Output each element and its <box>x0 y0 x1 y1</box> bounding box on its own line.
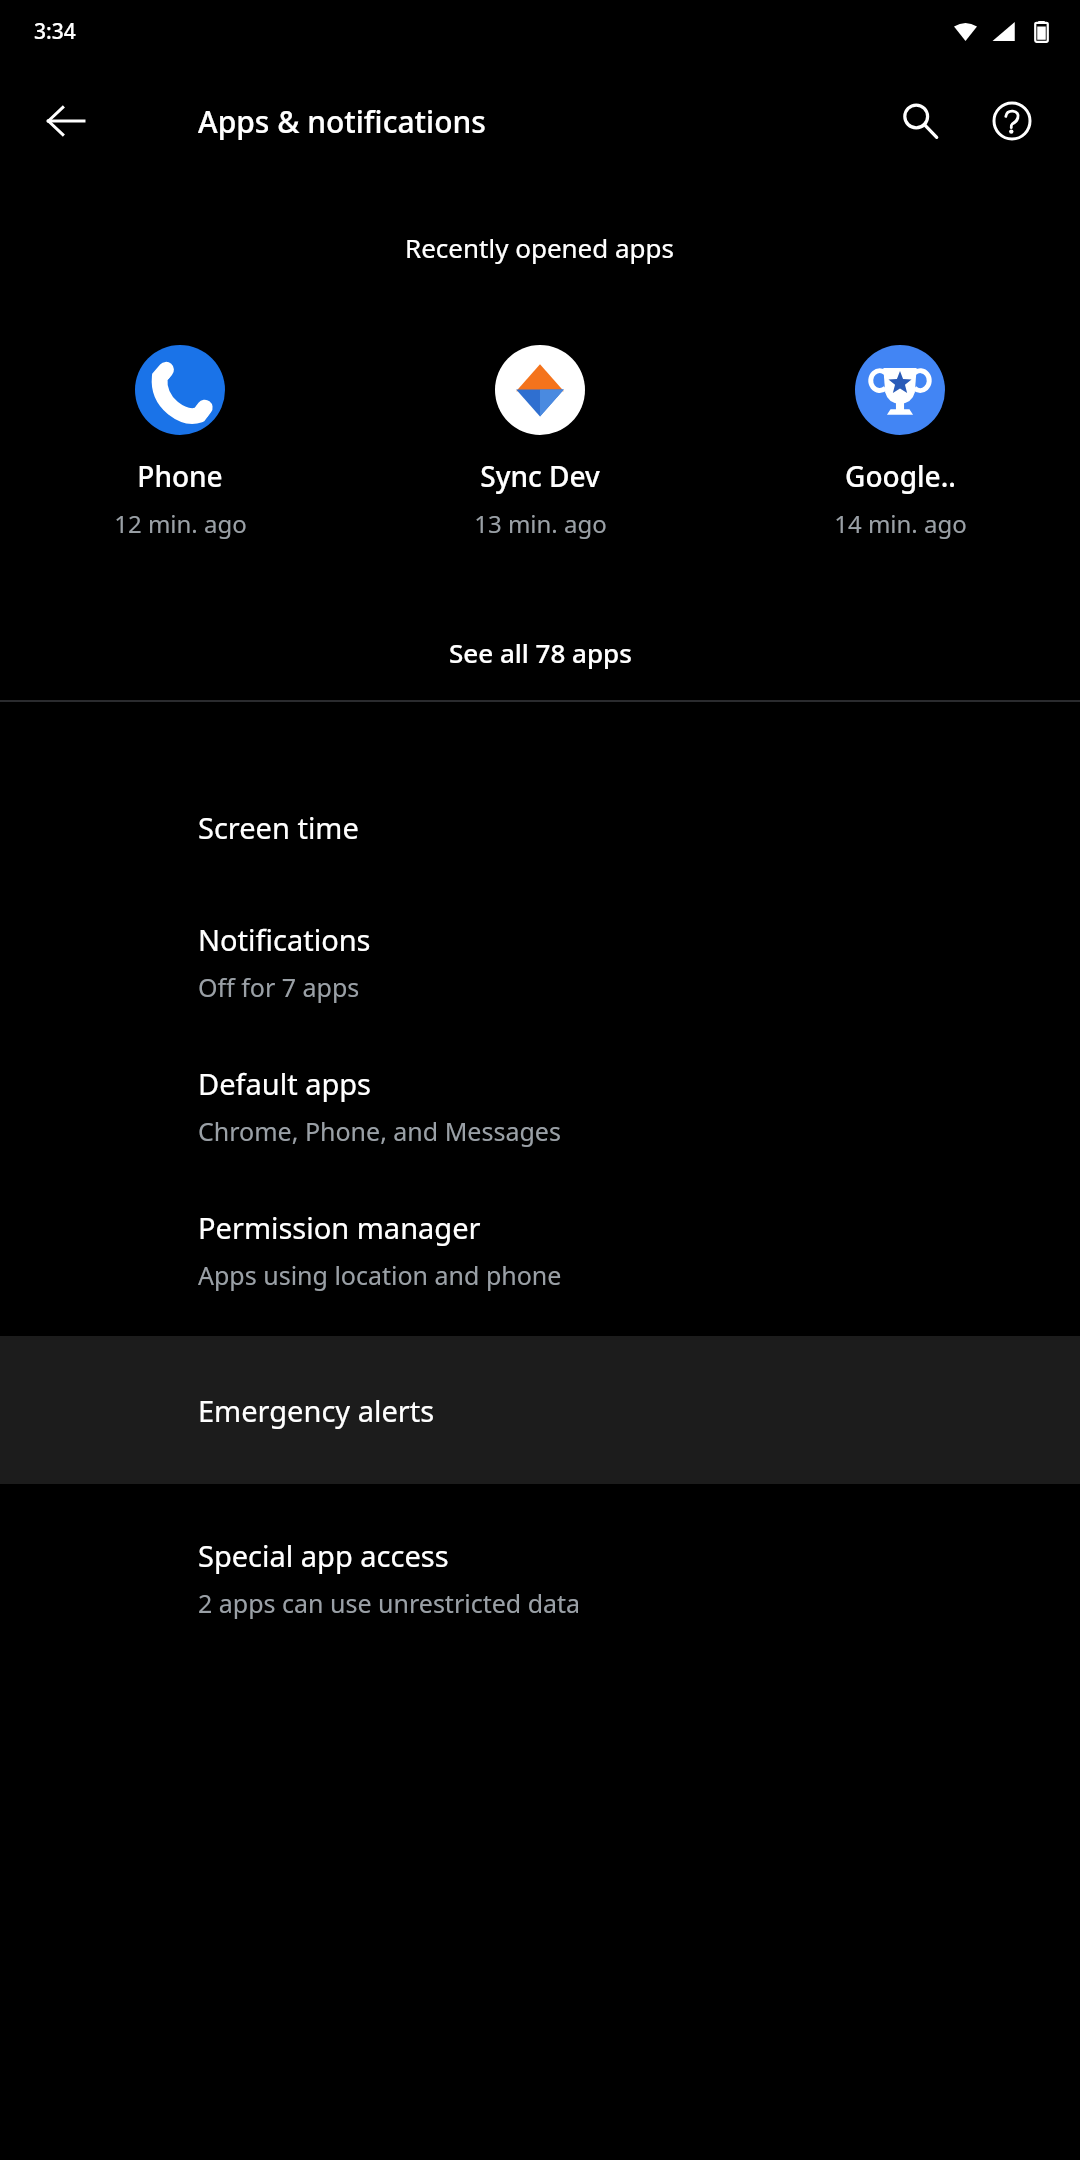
staticText: 14 min. ago <box>834 507 967 540</box>
staticText: Notifications <box>198 920 371 959</box>
button[interactable]: Notifications <box>0 890 1080 1034</box>
staticText: Recently opened apps <box>405 230 675 265</box>
staticText: Apps using location and phone <box>198 1258 562 1292</box>
staticText: Chrome, Phone, and Messages <box>198 1114 561 1148</box>
button[interactable]: Permission manager <box>0 1178 1080 1322</box>
staticText: 3:34 <box>34 17 76 46</box>
button[interactable]: Screen time <box>0 764 1080 890</box>
button[interactable]: Default apps <box>0 1034 1080 1178</box>
staticText: Special app access <box>198 1536 449 1575</box>
button[interactable]: Phone <box>0 341 360 544</box>
button[interactable]: Search <box>874 75 966 167</box>
staticText: Phone <box>137 457 223 495</box>
staticText: Permission manager <box>198 1208 481 1247</box>
staticText: Off for 7 apps <box>198 970 360 1004</box>
staticText: Google.. <box>845 457 956 495</box>
staticText: 12 min. ago <box>114 507 247 540</box>
button[interactable]: Special app access <box>0 1484 1080 1634</box>
button[interactable]: See all 78 apps <box>0 610 1080 694</box>
button[interactable]: Navigate up <box>20 75 112 167</box>
staticText: 13 min. ago <box>474 507 607 540</box>
button[interactable]: Google.. <box>720 341 1080 544</box>
button[interactable]: Help <box>966 75 1058 167</box>
staticText: Sync Dev <box>480 457 600 495</box>
staticText: Apps & notifications <box>198 101 486 142</box>
staticText: Emergency alerts <box>198 1391 435 1430</box>
button[interactable]: Emergency alerts <box>0 1336 1080 1484</box>
button[interactable]: Sync Dev <box>360 341 720 544</box>
staticText: See all 78 apps <box>449 635 632 670</box>
staticText: Screen time <box>198 808 359 847</box>
staticText: 2 apps can use unrestricted data <box>198 1586 581 1620</box>
staticText: Default apps <box>198 1064 372 1103</box>
